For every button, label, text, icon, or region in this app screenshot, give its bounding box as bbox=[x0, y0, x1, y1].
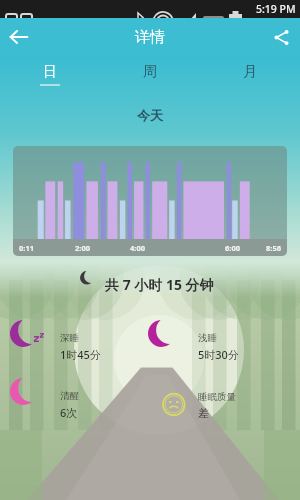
staticText: 差 bbox=[198, 406, 209, 420]
button[interactable]: 共 7 小时 15 分钟 bbox=[0, 275, 300, 294]
staticText: 深睡 bbox=[60, 332, 79, 344]
button[interactable]: Back bbox=[0, 18, 38, 56]
button[interactable]: 清醒 bbox=[22, 379, 150, 431]
button[interactable]: 周 bbox=[100, 56, 200, 92]
staticText: 周 bbox=[143, 63, 157, 81]
staticText: 2:00 bbox=[75, 243, 130, 253]
button[interactable]: 睡眠质量 bbox=[160, 379, 288, 431]
button[interactable]: 日 bbox=[0, 56, 100, 92]
button[interactable]: 浅睡 bbox=[160, 321, 288, 373]
staticText: 5:19 PM bbox=[256, 2, 296, 16]
staticText: 8:56 bbox=[240, 243, 281, 253]
staticText: 0:11 bbox=[19, 243, 75, 253]
staticText: 睡眠质量 bbox=[198, 391, 236, 403]
staticText: 月 bbox=[243, 63, 257, 81]
staticText: 日 bbox=[43, 63, 57, 81]
button[interactable]: Share bbox=[262, 18, 300, 56]
staticText: 1时45分 bbox=[60, 347, 101, 362]
staticText: 今天 bbox=[0, 107, 300, 123]
staticText: 6:00 bbox=[185, 243, 240, 253]
button[interactable]: 深睡 bbox=[22, 321, 150, 373]
staticText: 详情 bbox=[135, 28, 165, 47]
staticText: 5时30分 bbox=[198, 347, 239, 362]
staticText: 共 7 小时 15 分钟 bbox=[105, 275, 214, 294]
staticText: 浅睡 bbox=[198, 332, 217, 344]
button[interactable]: 月 bbox=[200, 56, 300, 92]
button[interactable]: 0:11 bbox=[13, 146, 287, 256]
staticText: 6次 bbox=[60, 405, 78, 420]
staticText: 清醒 bbox=[60, 390, 79, 402]
staticText: 4:00 bbox=[130, 243, 185, 253]
